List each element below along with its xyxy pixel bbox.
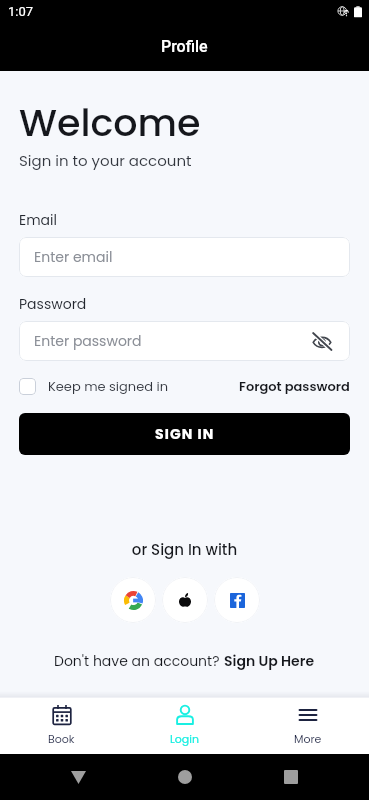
staticText: 1:07 bbox=[8, 4, 34, 19]
staticText: Book bbox=[48, 731, 75, 746]
staticText: Password bbox=[19, 294, 87, 314]
button[interactable]: Show password bbox=[310, 329, 334, 353]
button[interactable]: Login bbox=[123, 697, 246, 754]
button[interactable]: Keep me signed in bbox=[19, 377, 169, 395]
staticText: SIGN IN bbox=[155, 424, 215, 444]
button[interactable]: Home bbox=[178, 770, 192, 784]
staticText: Login bbox=[170, 731, 199, 746]
button[interactable]: Book bbox=[0, 697, 123, 754]
button[interactable]: Enter password bbox=[19, 321, 350, 361]
button[interactable]: Forgot password bbox=[239, 377, 350, 395]
staticText: Don't have an account? bbox=[54, 651, 224, 671]
button[interactable]: Sign Up Here bbox=[224, 651, 315, 671]
button[interactable]: Sign in with Facebook bbox=[214, 577, 260, 623]
button[interactable]: Enter email bbox=[19, 237, 350, 277]
button[interactable]: SIGN IN bbox=[19, 413, 350, 455]
staticText: Keep me signed in bbox=[48, 377, 169, 395]
staticText: Enter email bbox=[34, 247, 113, 267]
staticText: Welcome bbox=[19, 96, 201, 149]
staticText: Email bbox=[19, 210, 57, 230]
button[interactable]: Sign in with Apple bbox=[162, 577, 208, 623]
staticText: or Sign In with bbox=[0, 539, 369, 560]
button[interactable]: More bbox=[246, 697, 369, 754]
button[interactable]: Recents bbox=[284, 770, 298, 784]
staticText: Enter password bbox=[34, 331, 142, 351]
staticText: Profile bbox=[161, 37, 208, 56]
button[interactable]: Sign in with Google bbox=[110, 577, 156, 623]
staticText: Sign in to your account bbox=[19, 150, 192, 171]
button[interactable]: Back bbox=[71, 771, 86, 784]
staticText: More bbox=[294, 731, 322, 746]
